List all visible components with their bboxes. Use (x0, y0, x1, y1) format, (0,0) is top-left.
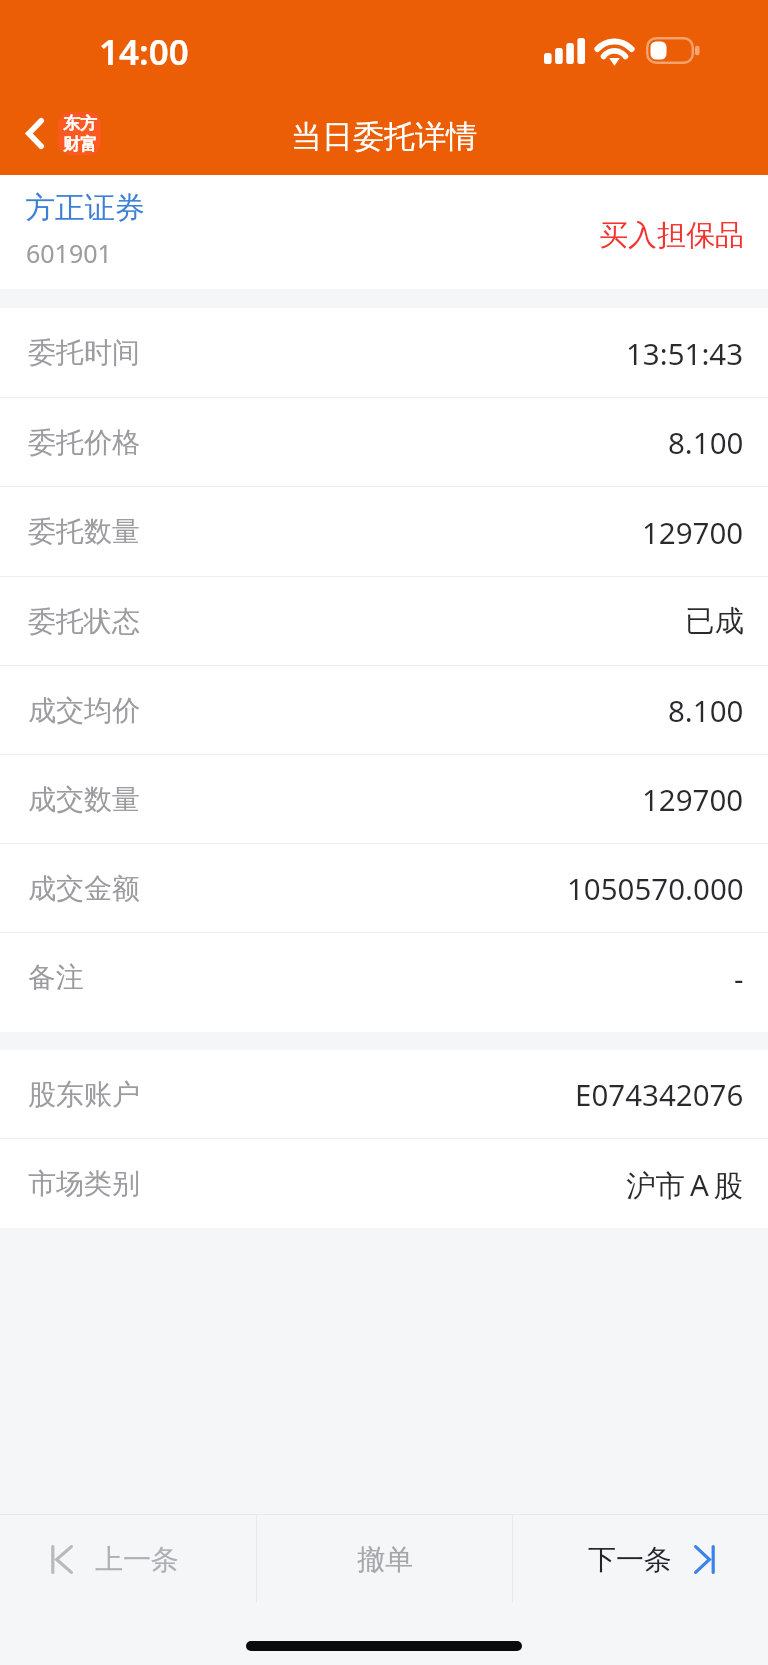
staticText: 8.100 (668, 422, 744, 462)
staticText: 129700 (642, 779, 744, 819)
staticText: 股东账户 (28, 1077, 140, 1112)
staticText: 当日委托详情 (291, 117, 477, 156)
button[interactable]: 方正证券 (0, 175, 768, 289)
staticText: 601901 (26, 236, 112, 270)
staticText: 委托价格 (28, 425, 140, 460)
button[interactable]: 上一条 (0, 1515, 256, 1603)
button[interactable]: 委托数量 (0, 487, 768, 577)
staticText: 14:00 (99, 28, 189, 76)
staticText: - (734, 958, 744, 998)
staticText: 13:51:43 (626, 333, 744, 373)
staticText: E074342076 (575, 1074, 744, 1114)
button[interactable]: Back (16, 108, 111, 159)
staticText: 129700 (642, 512, 744, 552)
staticText: 市场类别 (28, 1166, 140, 1201)
button[interactable]: 下一条 (513, 1515, 768, 1603)
staticText: 已成 (685, 603, 744, 640)
button[interactable]: 成交均价 (0, 666, 768, 755)
staticText: 成交数量 (28, 782, 140, 817)
staticText: 下一条 (588, 1542, 672, 1577)
button[interactable]: 成交数量 (0, 755, 768, 844)
button[interactable]: 委托状态 (0, 577, 768, 666)
staticText: 委托时间 (28, 335, 140, 370)
staticText: 方正证券 (25, 189, 145, 227)
staticText: 1050570.000 (567, 868, 744, 908)
staticText: 成交均价 (28, 693, 140, 728)
button[interactable]: 委托时间 (0, 308, 768, 398)
staticText: 8.100 (668, 690, 744, 730)
button[interactable]: 备注 (0, 933, 768, 1022)
staticText: 东方 (63, 113, 97, 134)
button[interactable]: 股东账户 (0, 1050, 768, 1139)
staticText: 沪市 A 股 (626, 1164, 744, 1204)
staticText: 备注 (28, 960, 84, 995)
staticText: 成交金额 (28, 871, 140, 906)
staticText: 撤单 (357, 1542, 413, 1577)
staticText: 财富 (63, 134, 97, 155)
button[interactable]: 市场类别 (0, 1139, 768, 1228)
button[interactable]: 成交金额 (0, 844, 768, 933)
staticText: 委托状态 (28, 604, 140, 639)
staticText: 委托数量 (28, 514, 140, 549)
button[interactable]: 委托价格 (0, 398, 768, 487)
staticText: 买入担保品 (599, 217, 744, 254)
button[interactable]: 撤单 (257, 1515, 512, 1603)
staticText: 上一条 (95, 1542, 179, 1577)
